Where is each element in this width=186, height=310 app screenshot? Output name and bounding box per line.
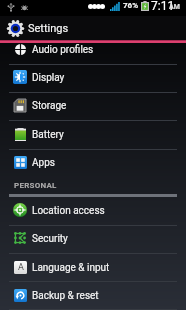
staticText: Security (32, 233, 68, 245)
staticText: Storage (32, 100, 67, 112)
staticText: Settings (28, 22, 69, 35)
button[interactable]: Backup & reset (0, 282, 186, 310)
button[interactable]: Apps (0, 149, 186, 177)
button[interactable]: Settings (0, 16, 186, 40)
button[interactable]: Storage (0, 92, 186, 120)
staticText: AM (169, 3, 180, 11)
staticText: Backup & reset (32, 290, 99, 302)
staticText: Apps (32, 157, 55, 169)
staticText: PERSONAL (14, 181, 57, 190)
button[interactable]: A (0, 254, 186, 282)
staticText: A (18, 262, 24, 273)
button[interactable]: Display (0, 64, 186, 92)
staticText: Language & input (32, 262, 110, 274)
button[interactable]: Battery (0, 121, 186, 149)
staticText: 76% (123, 1, 139, 10)
button[interactable]: Location access (0, 197, 186, 225)
staticText: 7:11 (151, 0, 175, 13)
staticText: Battery (32, 129, 64, 141)
staticText: Location access (32, 205, 105, 217)
staticText: Audio profiles (32, 44, 94, 56)
staticText: Display (32, 72, 65, 84)
button[interactable]: Security (0, 225, 186, 253)
button[interactable]: Audio profiles (0, 43, 186, 64)
